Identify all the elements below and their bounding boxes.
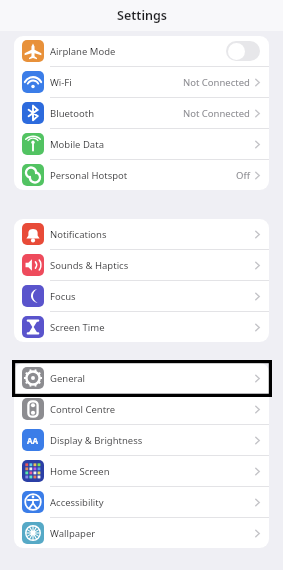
staticText: Mobile Data xyxy=(50,138,255,151)
staticText: Sounds & Haptics xyxy=(50,259,255,272)
button[interactable]: Bluetooth xyxy=(14,98,269,128)
button[interactable]: Airplane Mode xyxy=(14,36,269,66)
button[interactable]: Airplane Mode switch, off xyxy=(226,41,260,61)
button[interactable]: Focus xyxy=(14,281,269,311)
button[interactable]: Wallpaper xyxy=(14,518,269,548)
staticText: Not Connected xyxy=(183,107,250,120)
staticText: Control Centre xyxy=(50,403,255,416)
button[interactable]: Accessibility xyxy=(14,487,269,517)
staticText: Personal Hotspot xyxy=(50,169,236,182)
staticText: Wi-Fi xyxy=(50,76,183,89)
button[interactable]: Screen Time xyxy=(14,312,269,342)
staticText: Off xyxy=(236,169,250,182)
staticText: Settings xyxy=(117,7,167,24)
button[interactable]: Sounds & Haptics xyxy=(14,250,269,280)
staticText: AA xyxy=(27,435,39,446)
button[interactable]: Notifications xyxy=(14,219,269,249)
button[interactable]: General xyxy=(14,363,269,393)
staticText: Wallpaper xyxy=(50,527,255,540)
button[interactable]: Personal Hotspot xyxy=(14,160,269,190)
staticText: Home Screen xyxy=(50,465,255,478)
button[interactable]: Mobile Data xyxy=(14,129,269,159)
button[interactable]: Wi-Fi xyxy=(14,67,269,97)
staticText: Accessibility xyxy=(50,496,255,509)
button[interactable]: AA xyxy=(14,425,269,455)
staticText: Airplane Mode xyxy=(50,45,226,58)
staticText: Screen Time xyxy=(50,321,255,334)
button[interactable]: Control Centre xyxy=(14,394,269,424)
staticText: Display & Brightness xyxy=(50,434,255,447)
button[interactable]: Home Screen xyxy=(14,456,269,486)
staticText: Not Connected xyxy=(183,76,250,89)
staticText: Focus xyxy=(50,290,255,303)
staticText: Notifications xyxy=(50,228,255,241)
staticText: General xyxy=(50,372,255,385)
staticText: Bluetooth xyxy=(50,107,183,120)
